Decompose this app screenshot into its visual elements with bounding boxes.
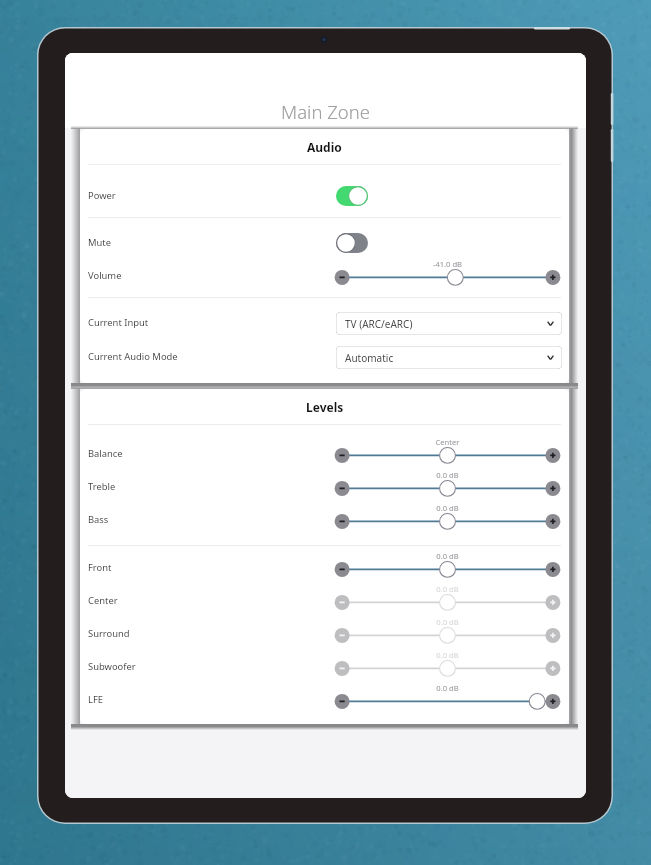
button[interactable]: TV (ARC/eARC) bbox=[336, 312, 562, 335]
button[interactable]: 0.0 dB bbox=[334, 647, 561, 685]
button[interactable]: Center bbox=[334, 434, 561, 472]
button[interactable]: Bass bbox=[80, 508, 320, 530]
button[interactable]: 0.0 dB bbox=[334, 614, 561, 652]
staticText: Subwoofer bbox=[88, 660, 136, 673]
staticText: Bass bbox=[88, 513, 109, 526]
staticText: TV (ARC/eARC) bbox=[345, 317, 413, 331]
button[interactable]: 0.0 dB bbox=[334, 500, 561, 538]
staticText: Balance bbox=[88, 447, 123, 460]
staticText: 0.0 dB bbox=[334, 650, 561, 660]
staticText: Current Audio Mode bbox=[88, 350, 178, 363]
button[interactable]: Switch on bbox=[336, 186, 368, 206]
button[interactable]: 0.0 dB bbox=[334, 680, 561, 718]
staticText: 0.0 dB bbox=[334, 470, 561, 480]
button[interactable]: 0.0 dB bbox=[334, 548, 561, 586]
staticText: 0.0 dB bbox=[334, 683, 561, 693]
button[interactable]: Surround bbox=[80, 622, 320, 644]
staticText: Power bbox=[88, 189, 116, 202]
button[interactable]: Subwoofer bbox=[80, 655, 320, 677]
staticText: Mute bbox=[88, 236, 112, 249]
button[interactable]: 0.0 dB bbox=[334, 467, 561, 505]
button[interactable]: LFE bbox=[80, 688, 320, 710]
staticText: Audio bbox=[307, 139, 342, 155]
staticText: 0.0 dB bbox=[334, 503, 561, 513]
button[interactable]: Volume bbox=[80, 264, 320, 286]
button[interactable]: Front bbox=[80, 556, 320, 578]
button[interactable]: 0.0 dB bbox=[334, 581, 561, 619]
button[interactable]: Mute bbox=[80, 231, 320, 253]
staticText: Center bbox=[88, 594, 118, 607]
button[interactable]: Center bbox=[80, 589, 320, 611]
staticText: 0.0 dB bbox=[334, 617, 561, 627]
staticText: -41.0 dB bbox=[334, 259, 561, 269]
staticText: Levels bbox=[306, 399, 344, 415]
staticText: Surround bbox=[88, 627, 130, 640]
staticText: Automatic bbox=[345, 351, 394, 365]
button[interactable]: Balance bbox=[80, 442, 320, 464]
staticText: Volume bbox=[88, 269, 122, 282]
button[interactable]: Switch off bbox=[336, 233, 368, 253]
staticText: Current Input bbox=[88, 316, 149, 329]
staticText: Treble bbox=[88, 480, 116, 493]
button[interactable]: Treble bbox=[80, 475, 320, 497]
button[interactable]: Power bbox=[80, 184, 320, 206]
staticText: Front bbox=[88, 561, 112, 574]
staticText: Main Zone bbox=[281, 99, 370, 124]
button[interactable]: Current Input bbox=[80, 311, 320, 333]
button[interactable]: -41.0 dB bbox=[334, 256, 561, 294]
button[interactable]: Automatic bbox=[336, 346, 562, 369]
staticText: LFE bbox=[88, 693, 104, 706]
staticText: 0.0 dB bbox=[334, 584, 561, 594]
staticText: 0.0 dB bbox=[334, 551, 561, 561]
staticText: Center bbox=[334, 437, 561, 447]
button[interactable]: Current Audio Mode bbox=[80, 345, 320, 367]
